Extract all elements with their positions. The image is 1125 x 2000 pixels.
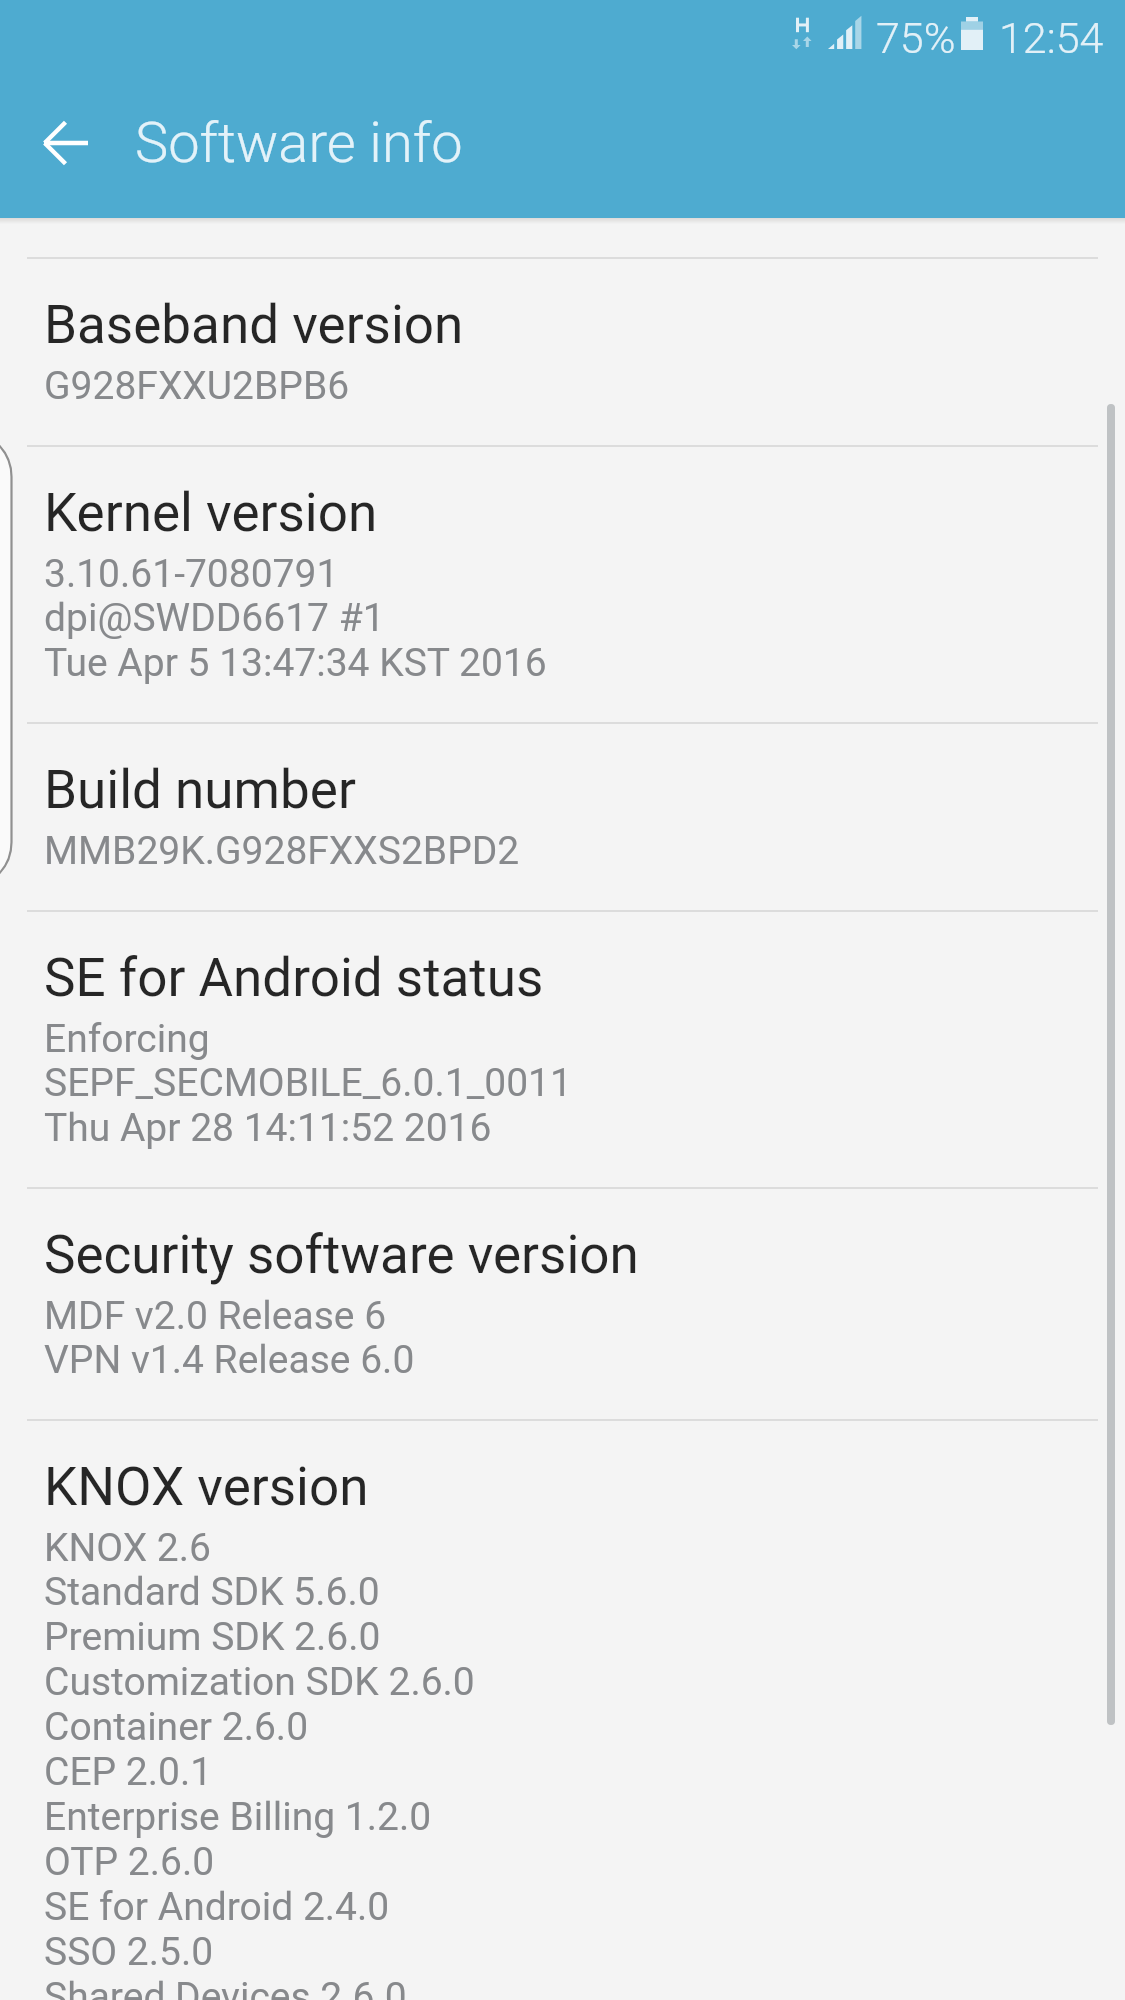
staticText: 75% [876, 13, 956, 63]
staticText: Baseband version [44, 294, 464, 356]
staticText: KNOX 2.6 Standard SDK 5.6.0 Premium SDK … [44, 1525, 475, 2000]
button[interactable]: Build number [0, 724, 1125, 910]
button[interactable]: Security software version [0, 1189, 1125, 1419]
staticText: SE for Android status [44, 947, 544, 1009]
staticText: 12:54 [999, 13, 1104, 63]
button[interactable]: SE for Android status [0, 912, 1125, 1187]
button[interactable]: KNOX version [0, 1421, 1125, 2000]
staticText: Software info [135, 110, 463, 176]
staticText: Kernel version [44, 482, 378, 544]
staticText: G928FXXU2BPB6 [44, 363, 350, 409]
staticText: Enforcing SEPF_SECMOBILE_6.0.1_0011 Thu … [44, 1016, 572, 1151]
staticText: MDF v2.0 Release 6 VPN v1.4 Release 6.0 [44, 1293, 415, 1383]
button[interactable]: Baseband version [0, 259, 1125, 445]
staticText: 3.10.61-7080791 dpi@SWDD6617 #1 Tue Apr … [44, 551, 547, 686]
staticText: MMB29K.G928FXXS2BPD2 [44, 828, 520, 874]
staticText: Build number [44, 759, 356, 821]
button[interactable]: Navigate up [22, 103, 110, 191]
button[interactable]: Kernel version [0, 447, 1125, 722]
staticText: Security software version [44, 1224, 639, 1286]
staticText: KNOX version [44, 1456, 369, 1518]
